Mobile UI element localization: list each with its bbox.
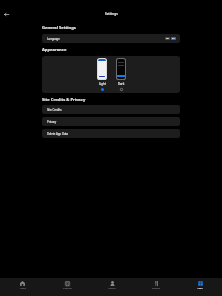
staticText: EN <box>172 37 175 40</box>
button[interactable]: Home <box>0 278 45 296</box>
button[interactable]: Privacy <box>42 117 180 126</box>
button[interactable]: Site Credits <box>42 105 180 114</box>
staticText: General Settings <box>42 25 76 31</box>
staticText: Site Credits <box>47 108 62 112</box>
button[interactable]: Back <box>1 9 11 19</box>
staticText: DE <box>166 37 169 40</box>
staticText: Settings <box>105 12 118 16</box>
staticText: Dark <box>118 82 125 86</box>
staticText: Privacy <box>47 120 57 124</box>
button[interactable]: Eateries <box>134 278 178 296</box>
staticText: Language <box>47 37 60 41</box>
button[interactable]: More <box>178 278 222 296</box>
button[interactable]: Language <box>42 34 180 43</box>
button[interactable]: Friends <box>90 278 134 296</box>
staticText: Home <box>20 287 26 290</box>
button[interactable]: DE <box>165 37 170 40</box>
button[interactable]: Light <box>97 58 107 91</box>
staticText: Friends <box>108 287 116 290</box>
staticText: Calendar <box>63 287 72 290</box>
button[interactable]: Delete App Data <box>42 129 180 138</box>
staticText: Appearance <box>42 47 67 53</box>
staticText: Eateries <box>152 287 160 290</box>
staticText: Delete App Data <box>47 132 69 136</box>
staticText: Site Credits & Privacy <box>42 97 86 103</box>
staticText: Light <box>99 82 106 86</box>
button[interactable]: EN <box>171 37 176 40</box>
staticText: More <box>197 287 203 290</box>
button[interactable]: Calendar <box>45 278 90 296</box>
button[interactable]: Dark <box>116 58 126 91</box>
